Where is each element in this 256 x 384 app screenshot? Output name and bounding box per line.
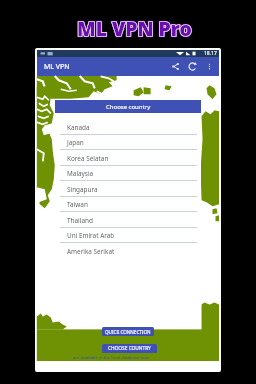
button[interactable]: Taiwan [55, 196, 201, 212]
button[interactable]: More options [201, 58, 218, 75]
staticText: ML VPN [44, 62, 70, 72]
button[interactable]: Amerika Serikat [55, 243, 201, 259]
staticText: CHOOSE COUNTRY [108, 345, 151, 352]
staticText: are available in the local database now [73, 355, 149, 361]
staticText: 18.17 [204, 50, 217, 57]
staticText: Kanada [67, 123, 90, 132]
staticText: Taiwan [67, 200, 88, 209]
button[interactable]: Singapura [55, 181, 201, 197]
button[interactable]: Uni Emirat Arab [55, 227, 201, 243]
staticText: Singapura [67, 185, 98, 194]
staticText: Korea Selatan [67, 154, 109, 163]
button[interactable]: Kanada [55, 119, 201, 135]
staticText: ML VPN Pro [77, 15, 192, 41]
staticText: ML VPN Pro [77, 15, 192, 41]
button[interactable]: Malaysia [55, 165, 201, 181]
staticText: Japan [67, 138, 84, 147]
staticText: Amerika Serikat [67, 247, 115, 256]
button[interactable]: QUICK CONNECTION [102, 327, 154, 336]
staticText: QUICK CONNECTION [105, 329, 151, 335]
button[interactable]: Japan [55, 134, 201, 150]
staticText: Malaysia [67, 169, 94, 178]
staticText: Thailand [67, 216, 93, 225]
button[interactable]: CHOOSE COUNTRY [102, 344, 157, 353]
button[interactable]: Korea Selatan [55, 150, 201, 166]
staticText: Uni Emirat Arab [67, 231, 115, 240]
staticText: ML VPN Pro [77, 15, 192, 41]
button[interactable]: Thailand [55, 212, 201, 228]
staticText: Choose country [106, 103, 151, 111]
button[interactable]: Refresh [184, 58, 201, 75]
button[interactable]: Share [167, 58, 184, 75]
